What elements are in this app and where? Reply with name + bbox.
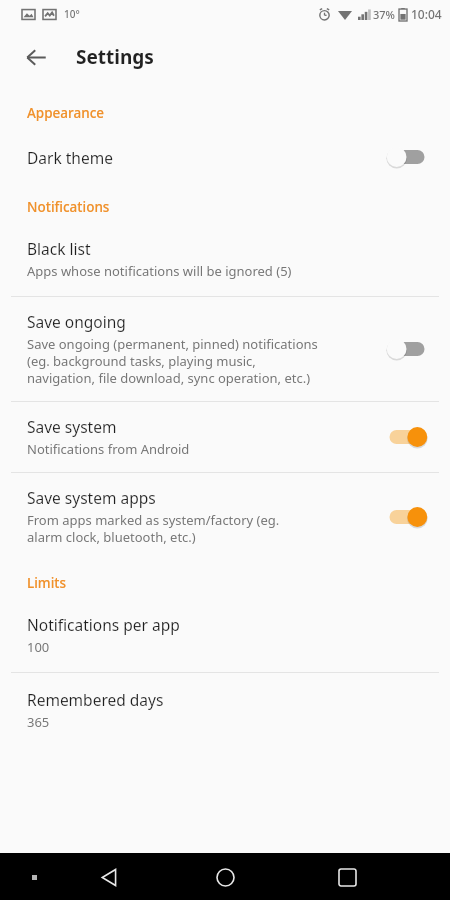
staticText: Limits [27,574,450,592]
button[interactable]: Save ongoing [0,297,450,401]
button[interactable]: Off [384,334,430,364]
button[interactable]: Save system apps [0,473,450,560]
button[interactable]: Dark theme [0,128,450,186]
staticText: Save ongoing [27,311,126,332]
button[interactable]: Black list [0,222,450,296]
staticText: 10° [64,7,80,21]
button[interactable]: On [384,422,430,452]
staticText: 37% [373,7,395,22]
staticText: Black list [27,238,91,259]
button[interactable]: Home [202,854,248,900]
button[interactable]: Back [14,35,58,79]
staticText: Notifications per app [27,614,180,635]
staticText: Save ongoing (permanent, pinned) notific… [27,335,318,387]
staticText: 365 [27,713,50,731]
button[interactable]: Recents [324,854,370,900]
staticText: Notifications [27,198,450,216]
staticText: From apps marked as system/factory (eg. … [27,511,280,546]
staticText: Notifications from Android [27,440,190,458]
staticText: Dark theme [27,147,113,168]
staticText: Save system apps [27,487,156,508]
staticText: Settings [76,44,154,70]
staticText: Appearance [27,104,450,122]
button[interactable]: Notifications per app [0,598,450,672]
button[interactable]: Save system [0,402,450,472]
button[interactable]: On [384,502,430,532]
button[interactable]: Remembered days [0,673,450,747]
staticText: 100 [27,638,50,656]
staticText: Save system [27,416,117,437]
button[interactable]: Menu [20,863,48,891]
button[interactable]: Back [86,854,132,900]
staticText: Apps whose notifications will be ignored… [27,262,292,280]
staticText: Remembered days [27,689,164,710]
button[interactable]: Off [384,142,430,172]
staticText: 10:04 [411,6,442,22]
